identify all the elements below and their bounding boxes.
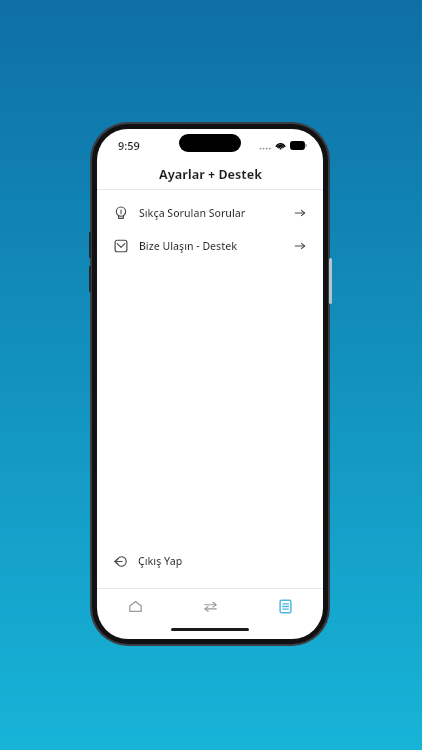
staticText: Bize Ulaşın - Destek — [139, 239, 238, 253]
button[interactable]: Settings and support — [248, 589, 323, 623]
button[interactable]: Home — [97, 589, 173, 623]
staticText: Çıkış Yap — [138, 554, 183, 568]
button[interactable]: Transfers — [173, 589, 248, 623]
button[interactable]: Çıkış Yap — [97, 546, 323, 576]
button[interactable]: Sıkça Sorulan Sorular — [97, 196, 323, 229]
staticText: Sıkça Sorulan Sorular — [139, 206, 246, 220]
staticText: 9:59 — [118, 138, 140, 153]
button[interactable]: Bize Ulaşın - Destek — [97, 229, 323, 262]
staticText: Ayarlar + Destek — [159, 166, 262, 183]
